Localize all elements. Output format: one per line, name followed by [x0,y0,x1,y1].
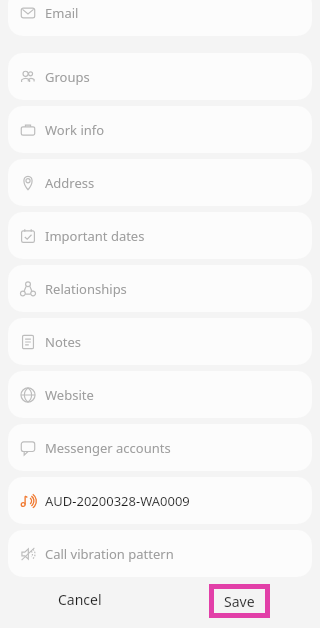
staticText: Address [45,174,95,192]
staticText: Call vibration pattern [45,545,174,563]
staticText: Website [45,386,94,404]
button[interactable]: Notes [8,318,312,365]
button[interactable]: Save [209,584,270,618]
staticText: Save [224,592,255,611]
button[interactable]: Email [8,0,312,36]
staticText: Groups [45,68,90,86]
button[interactable]: Website [8,371,312,418]
button[interactable]: Work info [8,106,312,153]
staticText: Email [45,4,79,22]
staticText: Messenger accounts [45,439,171,457]
button[interactable]: Relationships [8,265,312,312]
button[interactable]: Call vibration pattern [8,530,312,577]
button[interactable]: Messenger accounts [8,424,312,471]
staticText: Relationships [45,280,127,298]
staticText: Cancel [58,590,102,609]
button[interactable]: Important dates [8,212,312,259]
button[interactable]: Cancel [0,571,160,628]
staticText: Work info [45,121,105,139]
button[interactable]: Groups [8,53,312,100]
button[interactable]: Address [8,159,312,206]
button[interactable]: AUD-20200328-WA0009 [8,477,312,524]
staticText: Important dates [45,227,145,245]
staticText: AUD-20200328-WA0009 [45,492,190,510]
staticText: Notes [45,333,81,351]
